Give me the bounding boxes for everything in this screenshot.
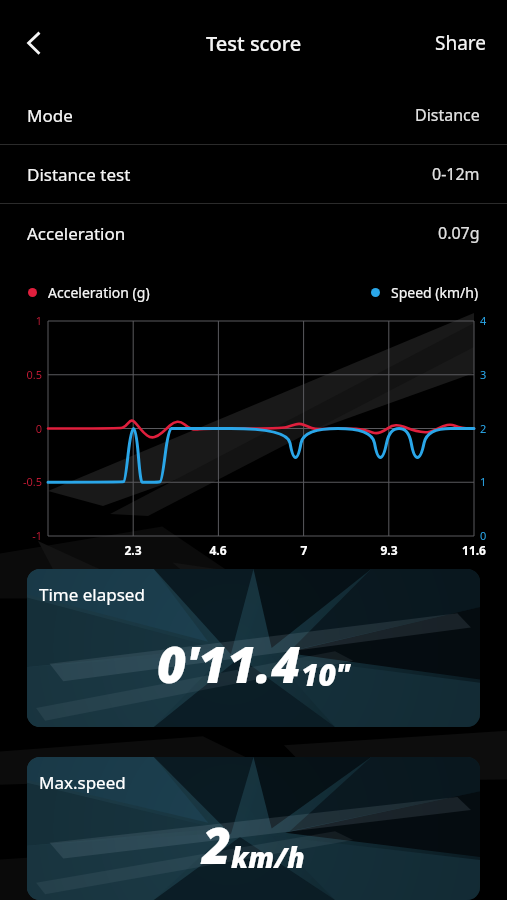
staticText: 4.6 xyxy=(186,542,250,558)
staticText: 7 xyxy=(272,542,336,558)
staticText: 1 xyxy=(480,474,504,489)
staticText: Mode xyxy=(27,104,73,127)
staticText: -0.5 xyxy=(2,474,42,489)
staticText: 4 xyxy=(480,313,504,328)
staticText: Test score xyxy=(206,30,302,57)
staticText: Speed (km/h) xyxy=(391,283,479,302)
button[interactable]: Mode xyxy=(0,86,507,144)
staticText: 0 xyxy=(2,421,42,436)
staticText: 9.3 xyxy=(357,542,421,558)
staticText: 11.6 xyxy=(442,542,506,558)
staticText: 0-12m xyxy=(432,163,480,185)
staticText: 0 xyxy=(480,528,504,543)
staticText: 1 xyxy=(2,313,42,328)
staticText: Distance test xyxy=(27,163,131,186)
staticText: 10" xyxy=(301,654,350,695)
staticText: Max.speed xyxy=(39,771,126,794)
staticText: 0.5 xyxy=(2,367,42,382)
staticText: 0'11.4 xyxy=(157,630,301,698)
staticText: 2.3 xyxy=(101,542,165,558)
button[interactable]: Back xyxy=(8,16,62,70)
button[interactable]: Distance test xyxy=(0,145,507,203)
staticText: 0.07g xyxy=(438,222,480,244)
button[interactable]: Acceleration xyxy=(0,204,507,262)
staticText: 2 xyxy=(202,811,231,879)
staticText: Distance xyxy=(415,104,480,126)
staticText: 3 xyxy=(480,367,504,382)
button[interactable]: Time elapsed xyxy=(27,569,480,727)
staticText: -1 xyxy=(2,528,42,543)
button[interactable]: Share xyxy=(415,16,507,70)
staticText: Acceleration xyxy=(27,222,126,245)
staticText: Acceleration (g) xyxy=(48,283,150,302)
staticText: Time elapsed xyxy=(39,583,145,606)
staticText: km/h xyxy=(231,838,305,876)
button[interactable]: Max.speed xyxy=(27,757,480,900)
staticText: Share xyxy=(435,30,487,56)
staticText: 2 xyxy=(480,421,504,436)
